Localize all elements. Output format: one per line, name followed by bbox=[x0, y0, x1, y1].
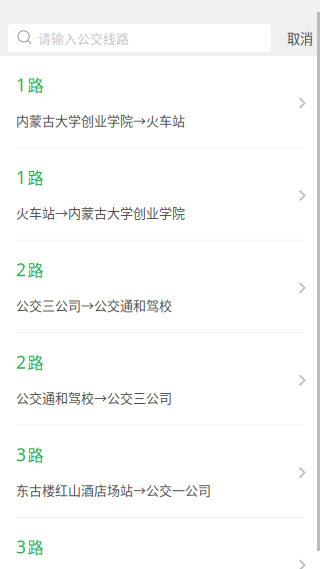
staticText: 路 bbox=[27, 73, 43, 96]
staticText: 路 bbox=[27, 258, 43, 281]
button[interactable]: 3 bbox=[0, 518, 320, 569]
staticText: 内蒙古大学创业学院→火车站 bbox=[16, 111, 185, 129]
staticText: 东古楼红山酒店场站→公交一公司 bbox=[16, 480, 211, 499]
staticText: 公交通和驾校→公交三公司 bbox=[16, 388, 172, 407]
button[interactable]: 1 bbox=[0, 56, 320, 147]
staticText: 火车站→内蒙古大学创业学院 bbox=[16, 203, 185, 222]
staticText: 2 bbox=[16, 258, 26, 281]
staticText: 3 bbox=[16, 535, 26, 559]
button[interactable]: 3 bbox=[0, 426, 320, 517]
button[interactable]: 1 bbox=[0, 148, 320, 240]
button[interactable]: 2 bbox=[0, 241, 320, 332]
staticText: 请输入公交线路 bbox=[38, 29, 129, 47]
staticText: 3 bbox=[16, 443, 26, 466]
button[interactable]: 取消 bbox=[280, 24, 320, 52]
button[interactable]: 2 bbox=[0, 333, 320, 425]
staticText: 路 bbox=[27, 443, 43, 466]
staticText: 1 bbox=[16, 165, 26, 189]
staticText: 取消 bbox=[287, 28, 313, 47]
staticText: 路 bbox=[27, 535, 43, 558]
staticText: 路 bbox=[27, 350, 43, 373]
staticText: 2 bbox=[16, 350, 26, 374]
staticText: 1 bbox=[16, 73, 26, 97]
staticText: 路 bbox=[27, 165, 43, 189]
staticText: 公交三公司→公交通和驾校 bbox=[16, 295, 172, 314]
